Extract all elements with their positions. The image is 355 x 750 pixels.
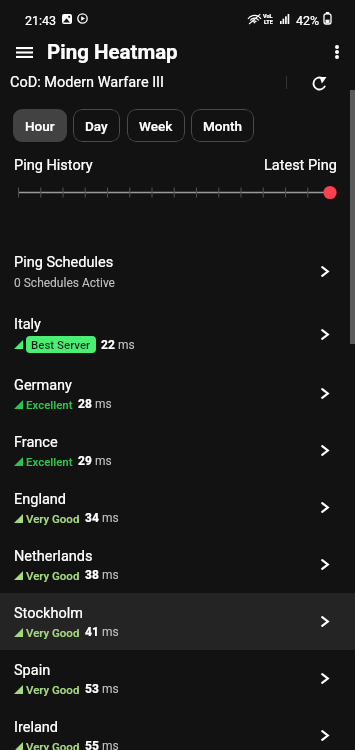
other: Open	[321, 559, 329, 570]
staticText: Netherlands	[14, 548, 93, 565]
staticText: France	[14, 434, 58, 451]
staticText: ms	[95, 397, 112, 411]
staticText: 21:43	[25, 13, 57, 28]
other: Open	[321, 673, 329, 684]
staticText: 42%	[296, 13, 320, 28]
staticText: Germany	[14, 377, 72, 394]
staticText: Day	[85, 118, 108, 134]
staticText: Very Good	[26, 512, 80, 525]
staticText: 0 Schedules Active	[14, 276, 115, 290]
staticText: Ping Schedules	[14, 254, 114, 271]
staticText: 28	[78, 397, 92, 411]
staticText: Best Server	[31, 338, 91, 351]
staticText: 55	[85, 739, 99, 750]
staticText: Italy	[14, 316, 41, 333]
staticText: ms	[102, 682, 119, 696]
button[interactable]: Day	[73, 109, 120, 142]
other: Open	[321, 502, 329, 513]
other: Open	[321, 445, 329, 456]
other: Open	[321, 266, 329, 277]
staticText: Very Good	[26, 569, 80, 582]
staticText: ms	[118, 338, 135, 352]
button[interactable]: Week	[127, 109, 185, 142]
button[interactable]: Germany	[0, 365, 355, 422]
staticText: 38	[85, 568, 99, 582]
staticText: 34	[85, 511, 99, 525]
staticText: Latest Ping	[264, 157, 337, 174]
other: Open	[321, 329, 329, 340]
staticText: Week	[139, 118, 173, 134]
staticText: ms	[102, 568, 119, 582]
staticText: Very Good	[26, 740, 80, 750]
staticText: ms	[102, 625, 119, 639]
staticText: Very Good	[26, 683, 80, 696]
staticText: ms	[95, 454, 112, 468]
button[interactable]: Stockholm	[0, 593, 355, 650]
staticText: Excellent	[26, 455, 73, 468]
button[interactable]: Month	[191, 109, 254, 142]
other: Open	[321, 616, 329, 627]
staticText: Spain	[14, 662, 51, 679]
button[interactable]: Ireland	[0, 707, 355, 750]
staticText: 53	[85, 682, 99, 696]
staticText: 41	[85, 625, 99, 639]
staticText: CoD: Modern Warfare III	[10, 74, 165, 91]
staticText: England	[14, 491, 66, 508]
staticText: ms	[102, 511, 119, 525]
button[interactable]: Netherlands	[0, 536, 355, 593]
button[interactable]: France	[0, 422, 355, 479]
button[interactable]: Refresh	[305, 69, 334, 97]
staticText: Ping History	[14, 157, 93, 174]
staticText: Ireland	[14, 719, 59, 736]
staticText: Month	[203, 118, 242, 134]
button[interactable]: Spain	[0, 650, 355, 707]
staticText: LTE	[264, 19, 273, 25]
button[interactable]: Navigation menu	[6, 37, 42, 67]
button[interactable]: Ping Schedules	[0, 239, 355, 304]
staticText: Stockholm	[14, 605, 83, 622]
staticText: Hour	[25, 118, 55, 134]
button[interactable]: Italy	[0, 304, 355, 365]
staticText: VoL	[263, 13, 273, 19]
staticText: 29	[78, 454, 92, 468]
staticText: 22	[101, 338, 115, 352]
other: Open	[321, 388, 329, 399]
button[interactable]: Hour	[13, 109, 67, 142]
other: Open	[321, 730, 329, 741]
button[interactable]: More options	[319, 37, 355, 67]
staticText: Very Good	[26, 626, 80, 639]
staticText: Excellent	[26, 398, 73, 411]
staticText: Ping Heatmap	[47, 40, 178, 64]
staticText: ms	[102, 739, 119, 750]
button[interactable]: England	[0, 479, 355, 536]
